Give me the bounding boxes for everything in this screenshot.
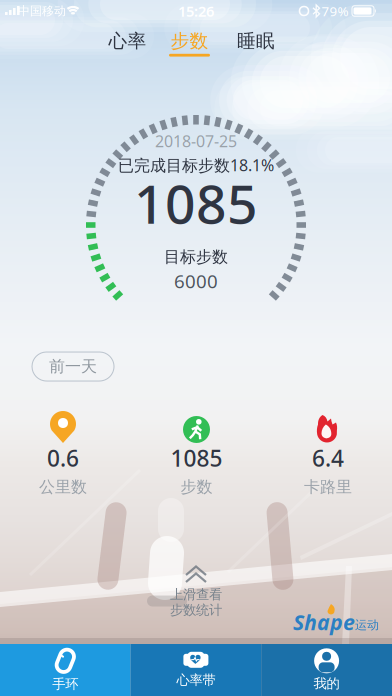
staticText: Shape (293, 608, 355, 636)
button[interactable]: 心率带 (131, 644, 261, 696)
button[interactable]: 手环 (0, 644, 131, 696)
staticText: 我的 (314, 675, 340, 692)
staticText: 上滑查看 (170, 586, 222, 603)
button[interactable]: 睡眠 (226, 26, 286, 56)
staticText: 2018-07-25 (155, 130, 237, 152)
staticText: 睡眠 (237, 29, 275, 52)
staticText: 心率带 (176, 672, 215, 688)
staticText: 运动 (355, 618, 379, 632)
staticText: 15:26 (178, 1, 214, 21)
button[interactable]: 我的 (261, 644, 392, 696)
staticText: 手环 (52, 676, 78, 692)
staticText: 中国移动 (18, 4, 66, 18)
button[interactable]: 步数 (159, 32, 219, 64)
button[interactable]: 心率 (97, 26, 157, 56)
staticText: 公里数 (39, 477, 87, 497)
staticText: 步数统计 (170, 602, 222, 618)
staticText: 6000 (174, 269, 218, 293)
staticText: 0.6 (47, 443, 79, 473)
staticText: 目标步数 (164, 247, 228, 267)
staticText: 已完成目标步数18.1% (118, 154, 274, 176)
staticText: 步数 (180, 477, 212, 497)
staticText: 6.4 (312, 443, 344, 473)
staticText: 心率 (108, 29, 146, 52)
staticText: 前一天 (49, 357, 97, 376)
staticText: 79% (321, 2, 348, 20)
button[interactable]: 前一天 (32, 352, 114, 381)
staticText: 1085 (134, 168, 258, 238)
staticText: 卡路里 (304, 477, 352, 497)
staticText: 步数 (170, 29, 208, 52)
staticText: 1085 (170, 443, 222, 473)
